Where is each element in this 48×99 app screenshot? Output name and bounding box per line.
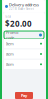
button[interactable]: Promo code [4,31,44,39]
staticText: $20.00 [5,18,32,29]
button[interactable]: Pay [15,92,33,99]
staticText: Item [6,62,14,67]
staticText: Pay [21,93,27,98]
staticText: Item [6,51,14,57]
staticText: Total [5,15,11,18]
staticText: Item [6,41,14,46]
staticText: Promo code [6,30,18,40]
staticText: 221B Baker Street [9,7,34,11]
staticText: Delivery address [9,2,39,7]
